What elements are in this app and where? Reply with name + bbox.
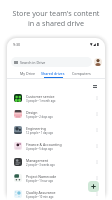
button[interactable]: Project Namecode [7, 170, 105, 186]
button[interactable]: Design [7, 106, 105, 122]
staticText: Project Namecode [26, 174, 57, 179]
staticText: 12 people • 1 day ago [26, 131, 54, 135]
button[interactable]: My Drive [14, 69, 40, 79]
button[interactable]: More options [93, 94, 101, 102]
button[interactable]: Engineering [7, 122, 105, 138]
button[interactable]: More options [93, 110, 101, 118]
staticText: Shared drives [41, 71, 65, 76]
staticText: 3 people • 1 month ago [26, 99, 56, 103]
staticText: Design [26, 110, 38, 115]
staticText: 5 people • 2 days ago [26, 115, 53, 119]
staticText: Finance & Accounting [26, 142, 62, 147]
staticText: Customer service [26, 94, 55, 99]
button[interactable]: More options [93, 190, 101, 198]
button[interactable]: Quality Assurance [7, 186, 105, 200]
staticText: Engineering [26, 126, 46, 131]
staticText: Store your team's content [0, 8, 112, 18]
staticText: 9:30 [13, 42, 21, 47]
button[interactable]: New [88, 181, 99, 192]
staticText: Search in Drive [20, 60, 46, 65]
button[interactable]: Finance & Accounting [7, 138, 105, 154]
staticText: in a shared drive [0, 18, 112, 28]
staticText: Management [26, 158, 49, 163]
button[interactable]: Search in Drive [11, 57, 92, 67]
button[interactable]: More options [93, 174, 101, 182]
staticText: My Drive [20, 71, 35, 76]
button[interactable]: Switch to grid view [91, 82, 99, 90]
staticText: 6 people • 10 min ago [26, 195, 54, 199]
staticText: Quality Assurance [26, 190, 56, 195]
button[interactable]: More options [93, 142, 101, 150]
button[interactable]: Shared drives [40, 69, 66, 79]
staticText: 4 people • 5 days ago [26, 147, 53, 151]
staticText: 2 people • 3 weeks ago [26, 163, 55, 167]
staticText: Computers [72, 71, 91, 76]
button[interactable]: Customer service [7, 90, 105, 106]
staticText: 8 people • 1 hour ago [26, 179, 54, 183]
button[interactable]: Account [94, 58, 102, 66]
button[interactable]: Computers [68, 69, 94, 79]
button[interactable]: More options [93, 158, 101, 166]
button[interactable]: Management [7, 154, 105, 170]
button[interactable]: More options [93, 126, 101, 134]
